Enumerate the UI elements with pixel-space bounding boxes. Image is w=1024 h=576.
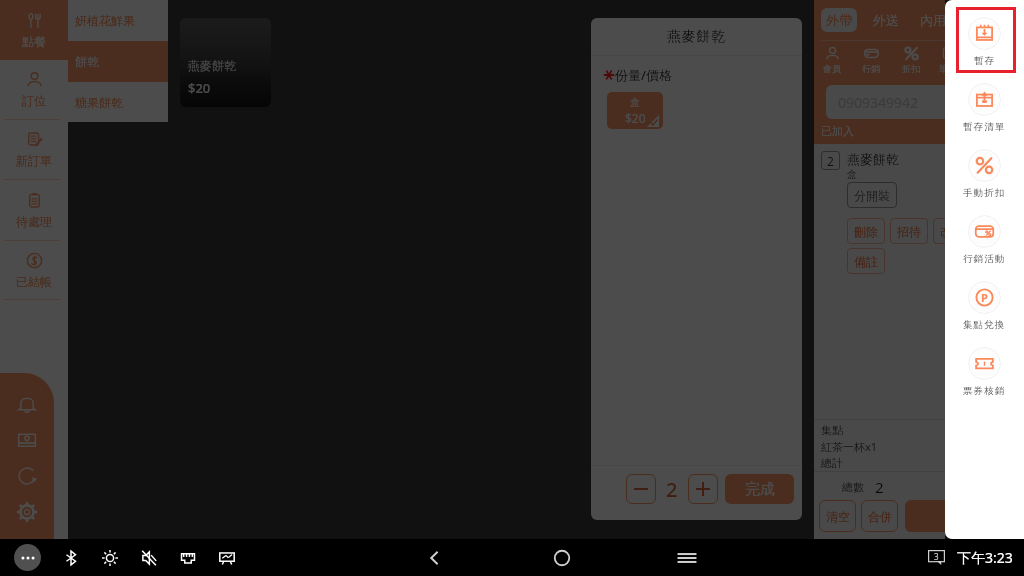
- button[interactable]: 招待: [890, 218, 928, 244]
- button[interactable]: 外送: [868, 8, 904, 32]
- button[interactable]: 盒: [607, 92, 663, 129]
- button[interactable]: Brightness: [101, 549, 119, 567]
- button[interactable]: 清空: [819, 500, 856, 532]
- button[interactable]: 刪除: [847, 218, 885, 244]
- button[interactable]: 燕麥餅乾: [180, 18, 271, 107]
- button[interactable]: More options: [14, 544, 41, 571]
- staticText: 外送: [873, 12, 899, 28]
- button[interactable]: 折扣: [895, 46, 927, 74]
- staticText: 分開裝: [854, 188, 890, 203]
- staticText: 總數: [842, 480, 864, 494]
- staticText: 份量/價格: [615, 66, 673, 84]
- button[interactable]: 票券核銷: [945, 339, 1024, 405]
- button[interactable]: 分開裝: [847, 182, 897, 208]
- button[interactable]: 手動折扣: [945, 141, 1024, 207]
- staticText: 票券核銷: [963, 385, 1006, 397]
- staticText: 改: [940, 224, 945, 239]
- staticText: 新訂單: [16, 153, 52, 168]
- staticText: 招待: [897, 224, 921, 239]
- staticText: $20: [625, 110, 646, 126]
- staticText: 2: [827, 153, 834, 169]
- button[interactable]: 內用: [915, 8, 951, 32]
- button[interactable]: Increase quantity: [688, 474, 718, 504]
- staticText: 清空: [826, 509, 850, 524]
- staticText: 已加入: [821, 124, 854, 138]
- staticText: 2: [875, 477, 884, 497]
- button[interactable]: Recent apps: [676, 547, 698, 569]
- staticText: 訂位: [22, 93, 46, 108]
- button[interactable]: Ethernet: [179, 549, 197, 567]
- button[interactable]: 合併: [861, 500, 898, 532]
- staticText: 集點: [821, 423, 843, 437]
- staticText: $20: [188, 79, 211, 97]
- button[interactable]: 已結帳: [0, 241, 68, 299]
- staticText: 集點兌換: [963, 319, 1006, 331]
- staticText: 合併: [868, 509, 892, 524]
- staticText: 刪除: [854, 224, 878, 239]
- staticText: 內用: [920, 12, 946, 28]
- staticText: 筆記: [939, 63, 957, 74]
- button[interactable]: 暫存清單: [945, 75, 1024, 141]
- button[interactable]: 改: [933, 218, 952, 244]
- button[interactable]: 妍植花鮮果: [68, 0, 168, 41]
- staticText: P: [981, 290, 988, 305]
- button[interactable]: P: [945, 273, 1024, 339]
- staticText: 行銷: [862, 63, 880, 74]
- button[interactable]: 點餐: [0, 0, 68, 60]
- staticText: 折扣: [902, 63, 920, 74]
- staticText: 妍植花鮮果: [75, 13, 135, 28]
- button[interactable]: 新訂單: [0, 120, 68, 179]
- button[interactable]: 行銷活動: [945, 207, 1024, 273]
- button[interactable]: Mute: [140, 549, 158, 567]
- button[interactable]: 待處理: [0, 180, 68, 240]
- button[interactable]: Settings: [16, 501, 38, 523]
- staticText: 下午3:23: [957, 548, 1013, 567]
- staticText: 點餐: [22, 34, 46, 49]
- staticText: 待處理: [16, 214, 52, 229]
- button[interactable]: Notifications: [16, 393, 38, 415]
- button[interactable]: 糖果餅乾: [68, 82, 168, 122]
- button[interactable]: Bluetooth: [62, 549, 80, 567]
- button[interactable]: 餅乾: [68, 41, 168, 82]
- staticText: 暫存: [974, 55, 996, 67]
- button[interactable]: Checkout: [905, 500, 950, 532]
- staticText: 手動折扣: [963, 187, 1006, 199]
- button[interactable]: 暫存: [945, 9, 1024, 75]
- staticText: 暫存清單: [963, 121, 1006, 133]
- staticText: 2: [666, 476, 678, 503]
- staticText: 餅乾: [75, 54, 99, 69]
- button[interactable]: 完成: [725, 474, 794, 504]
- button[interactable]: Screencast: [218, 549, 236, 567]
- staticText: 盒: [847, 168, 857, 181]
- staticText: 糖果餅乾: [75, 95, 123, 110]
- button[interactable]: 行銷: [855, 46, 887, 74]
- staticText: 3: [934, 551, 939, 562]
- button[interactable]: 備註: [847, 248, 885, 274]
- staticText: 行銷活動: [963, 253, 1006, 265]
- button[interactable]: 訂位: [0, 60, 68, 119]
- staticText: 完成: [745, 480, 775, 499]
- staticText: 外帶: [826, 12, 852, 28]
- staticText: 備註: [854, 254, 878, 269]
- staticText: 燕麥餅乾: [847, 151, 899, 167]
- button[interactable]: Home: [551, 547, 573, 569]
- button[interactable]: 筆記: [932, 46, 964, 74]
- staticText: 已結帳: [16, 274, 52, 289]
- button[interactable]: 0909349942: [826, 85, 950, 119]
- staticText: 燕麥餅乾: [188, 58, 236, 73]
- staticText: 紅茶一杯x1: [821, 439, 878, 454]
- staticText: 0909349942: [838, 93, 919, 112]
- staticText: 總計: [821, 456, 843, 470]
- button[interactable]: Sync: [16, 465, 38, 487]
- button[interactable]: Back: [424, 547, 446, 569]
- staticText: 盒: [630, 96, 640, 109]
- staticText: 會員: [823, 63, 841, 74]
- staticText: 燕麥餅乾: [667, 28, 727, 46]
- button[interactable]: Decrease quantity: [626, 474, 656, 504]
- button[interactable]: Cash drawer: [16, 429, 38, 451]
- button[interactable]: 外帶: [821, 8, 857, 32]
- button[interactable]: 會員: [816, 46, 848, 74]
